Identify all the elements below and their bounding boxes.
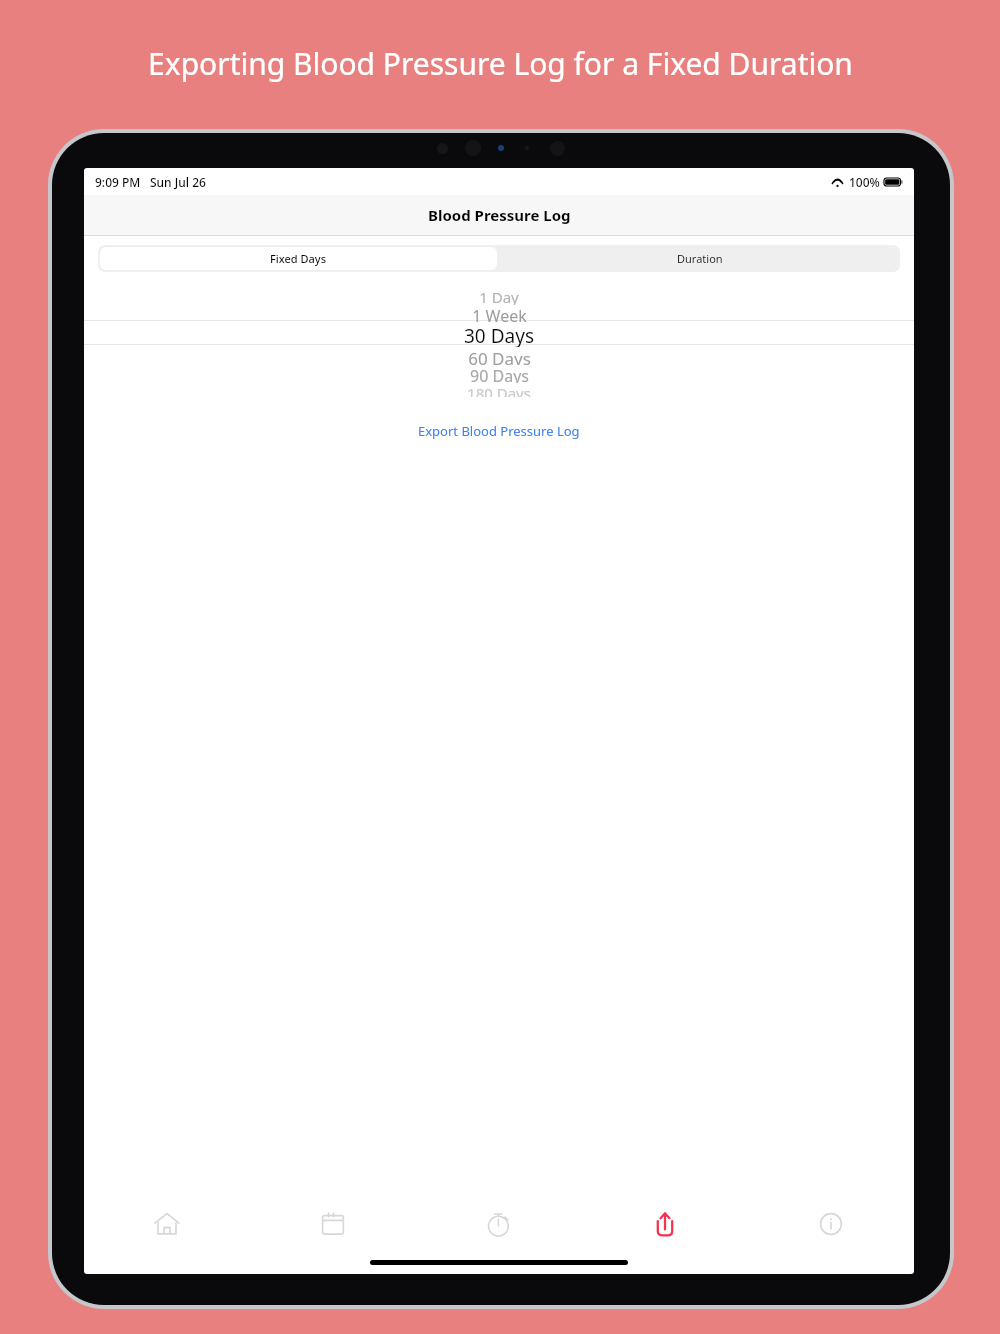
button[interactable]: 1 Week: [84, 305, 914, 323]
staticText: 9:09 PM: [95, 174, 141, 190]
staticText: Blood Pressure Log: [428, 205, 571, 225]
staticText: Fixed Days: [270, 251, 327, 266]
staticText: Sun Jul 26: [150, 174, 206, 190]
button[interactable]: Fixed Days: [100, 247, 497, 270]
staticText: 30 Days: [464, 323, 534, 347]
staticText: Duration: [677, 251, 723, 266]
button[interactable]: Home: [84, 1198, 250, 1250]
button[interactable]: Info: [748, 1198, 914, 1250]
staticText: 60 Days: [468, 347, 531, 365]
button[interactable]: 30 Days: [84, 323, 914, 347]
button[interactable]: 90 Days: [84, 365, 914, 383]
staticText: 90 Days: [470, 365, 529, 383]
button[interactable]: Timer: [416, 1198, 582, 1250]
button[interactable]: 1 Day: [84, 287, 914, 305]
button[interactable]: Calendar: [250, 1198, 416, 1250]
staticText: Export Blood Pressure Log: [418, 422, 580, 440]
staticText: 1 Week: [472, 305, 527, 323]
button[interactable]: 180 Days: [84, 383, 914, 397]
button[interactable]: Export: [582, 1198, 748, 1250]
staticText: 1 Day: [479, 287, 519, 305]
button[interactable]: Duration: [499, 245, 900, 272]
button[interactable]: 60 Days: [84, 347, 914, 365]
staticText: 180 Days: [467, 383, 531, 397]
staticText: 100%: [849, 174, 880, 190]
button[interactable]: Export Blood Pressure Log: [410, 419, 588, 443]
staticText: Exporting Blood Pressure Log for a Fixed…: [148, 43, 853, 84]
